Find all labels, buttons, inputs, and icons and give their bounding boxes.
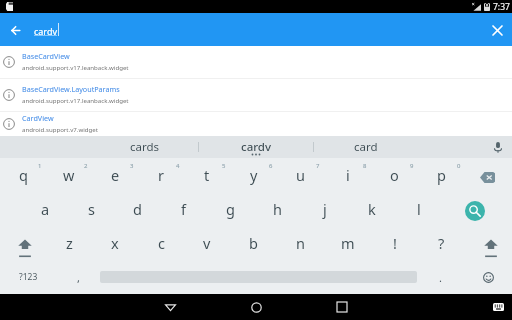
button[interactable]: f: [160, 192, 207, 226]
staticText: ?: [438, 233, 445, 253]
button[interactable]: Hide keyboard: [489, 298, 507, 316]
button[interactable]: !: [371, 226, 418, 260]
staticText: BaseCardView.LayoutParams: [22, 84, 120, 94]
staticText: y: [250, 165, 258, 185]
button[interactable]: card: [314, 136, 418, 158]
button[interactable]: t: [184, 158, 230, 192]
button[interactable]: Emoji: [464, 260, 512, 294]
button[interactable]: g: [207, 192, 254, 226]
button[interactable]: h: [254, 192, 301, 226]
staticText: 5: [222, 162, 226, 170]
staticText: cardv: [241, 139, 272, 155]
staticText: x: [111, 233, 119, 253]
staticText: h: [273, 199, 282, 219]
staticText: j: [323, 199, 327, 219]
button[interactable]: Shift: [465, 226, 512, 260]
button[interactable]: Backspace: [465, 158, 512, 192]
staticText: .: [439, 270, 442, 285]
button[interactable]: c: [138, 226, 184, 260]
button[interactable]: ?: [418, 226, 465, 260]
button[interactable]: .: [417, 260, 464, 294]
staticText: 4: [176, 162, 180, 170]
button[interactable]: Space: [100, 260, 417, 294]
button[interactable]: o: [371, 158, 418, 192]
button[interactable]: ,: [56, 260, 100, 294]
button[interactable]: cardv: [199, 136, 313, 158]
staticText: i: [346, 165, 350, 185]
staticText: e: [111, 165, 120, 185]
button[interactable]: Back: [2, 17, 28, 43]
staticText: 6: [269, 162, 273, 170]
button[interactable]: w: [46, 158, 92, 192]
staticText: k: [368, 199, 376, 219]
button[interactable]: cards: [91, 136, 198, 158]
staticText: 1: [38, 162, 42, 170]
button[interactable]: Recents: [299, 294, 385, 320]
staticText: r: [158, 165, 164, 185]
staticText: f: [181, 199, 186, 219]
staticText: a: [41, 199, 50, 219]
staticText: p: [437, 165, 446, 185]
staticText: 8: [363, 162, 367, 170]
staticText: g: [226, 199, 235, 219]
button[interactable]: Shift: [0, 226, 46, 260]
button[interactable]: d: [114, 192, 160, 226]
staticText: !: [393, 233, 397, 253]
button[interactable]: CardView: [0, 112, 512, 136]
button[interactable]: r: [138, 158, 184, 192]
button[interactable]: k: [348, 192, 395, 226]
staticText: z: [66, 233, 73, 253]
button[interactable]: ?123: [0, 260, 56, 294]
staticText: 2: [84, 162, 88, 170]
button[interactable]: BaseCardView: [0, 46, 512, 78]
button[interactable]: Search: [442, 192, 512, 226]
staticText: c: [158, 233, 165, 253]
button[interactable]: p: [418, 158, 465, 192]
staticText: 3: [130, 162, 134, 170]
button[interactable]: b: [230, 226, 277, 260]
button[interactable]: s: [68, 192, 114, 226]
button[interactable]: q: [0, 158, 46, 192]
button[interactable]: Home: [213, 294, 299, 320]
button[interactable]: Back: [127, 294, 213, 320]
button[interactable]: e: [92, 158, 138, 192]
staticText: 7:37: [493, 1, 510, 13]
button[interactable]: m: [324, 226, 371, 260]
staticText: BaseCardView: [22, 51, 70, 61]
staticText: card: [354, 139, 378, 155]
staticText: 0: [457, 162, 461, 170]
button[interactable]: BaseCardView.LayoutParams: [0, 79, 512, 111]
staticText: w: [63, 165, 75, 185]
button[interactable]: i: [324, 158, 371, 192]
staticText: b: [249, 233, 258, 253]
staticText: d: [133, 199, 142, 219]
staticText: m: [341, 233, 355, 253]
staticText: l: [417, 199, 421, 219]
button[interactable]: l: [395, 192, 442, 226]
button[interactable]: n: [277, 226, 324, 260]
staticText: v: [203, 233, 211, 253]
button[interactable]: j: [301, 192, 348, 226]
button[interactable]: x: [92, 226, 138, 260]
staticText: s: [88, 199, 95, 219]
staticText: o: [390, 165, 399, 185]
staticText: android.support.v17.leanback.widget: [22, 63, 129, 71]
button[interactable]: a: [22, 192, 68, 226]
staticText: cardv: [34, 25, 58, 37]
button[interactable]: v: [184, 226, 230, 260]
staticText: u: [296, 165, 305, 185]
staticText: 7: [316, 162, 320, 170]
button[interactable]: u: [277, 158, 324, 192]
staticText: cards: [130, 139, 160, 155]
button[interactable]: y: [230, 158, 277, 192]
staticText: 9: [410, 162, 414, 170]
button[interactable]: Clear search: [485, 18, 509, 42]
staticText: t: [204, 165, 210, 185]
staticText: n: [296, 233, 305, 253]
button[interactable]: z: [46, 226, 92, 260]
staticText: CardView: [22, 113, 54, 123]
button[interactable]: Voice input: [483, 136, 512, 158]
staticText: android.support.v7.widget: [22, 125, 98, 133]
staticText: android.support.v17.leanback.widget: [22, 96, 129, 104]
staticText: ,: [77, 270, 80, 285]
